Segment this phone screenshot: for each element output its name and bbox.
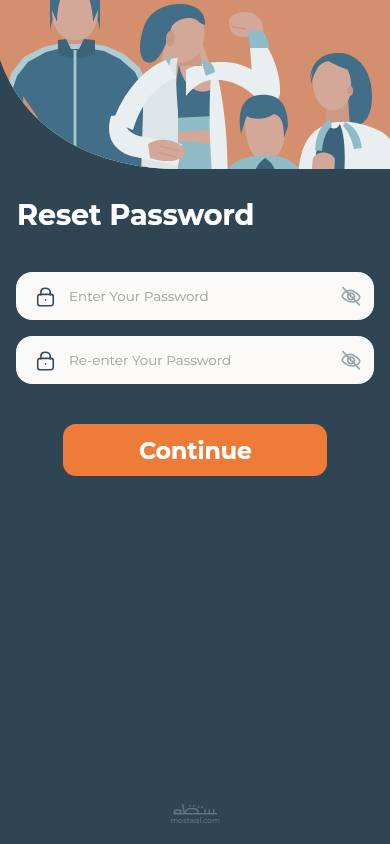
- button[interactable]: Re-enter Your Password: [16, 336, 374, 384]
- button[interactable]: Continue: [63, 424, 327, 476]
- staticText: Reset Password: [17, 197, 255, 232]
- staticText: Continue: [139, 436, 252, 465]
- staticText: Re-enter Your Password: [69, 352, 232, 368]
- button[interactable]: Show password: [333, 342, 369, 378]
- button[interactable]: Show password: [333, 278, 369, 314]
- staticText: Enter Your Password: [69, 288, 209, 304]
- button[interactable]: Enter Your Password: [16, 272, 374, 320]
- staticText: mostaql.com: [170, 816, 220, 825]
